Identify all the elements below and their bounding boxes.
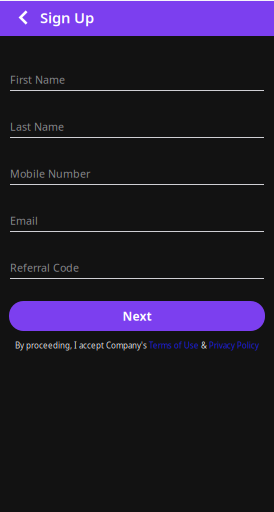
staticText: Next xyxy=(122,308,151,324)
staticText: First Name xyxy=(10,72,65,87)
button[interactable]: Last Name xyxy=(10,121,264,138)
button[interactable]: Terms of Use xyxy=(149,340,199,351)
staticText: Mobile Number xyxy=(10,166,90,181)
staticText: By proceeding, I accept Company's xyxy=(15,340,149,351)
button[interactable]: Referral Code xyxy=(10,262,264,279)
button[interactable]: Next xyxy=(9,301,265,331)
staticText: & xyxy=(199,340,209,351)
button[interactable]: Mobile Number xyxy=(10,168,264,185)
staticText: Terms of Use xyxy=(149,340,199,351)
staticText: Sign Up xyxy=(40,8,94,27)
staticText: Privacy Policy xyxy=(209,340,259,351)
staticText: Last Name xyxy=(10,119,64,134)
button[interactable]: Email xyxy=(10,215,264,232)
staticText: Email xyxy=(10,213,38,228)
staticText: Referral Code xyxy=(10,260,79,275)
button[interactable]: Back xyxy=(10,0,34,35)
button[interactable]: Privacy Policy xyxy=(209,340,259,351)
button[interactable]: First Name xyxy=(10,74,264,91)
